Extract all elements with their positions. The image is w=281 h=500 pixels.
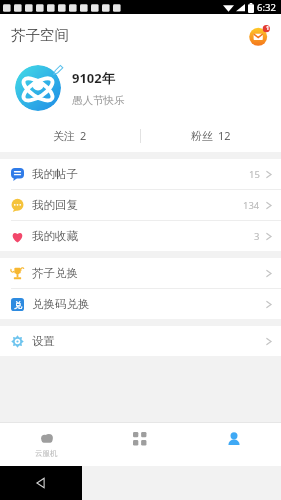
button[interactable]: 关注 (0, 119, 140, 152)
staticText: 15 (249, 168, 260, 181)
button[interactable]: 我的帖子 (0, 159, 281, 189)
staticText: 芥子空间 (11, 26, 69, 44)
button[interactable]: 设置 (0, 326, 281, 356)
staticText: 关注 (53, 129, 75, 143)
staticText: 1 (266, 24, 270, 31)
staticText: 愚人节快乐 (72, 94, 125, 107)
staticText: 3 (254, 230, 260, 243)
button[interactable]: Profile (187, 422, 281, 466)
staticText: 设置 (32, 334, 55, 348)
staticText: 6:32 (257, 1, 276, 14)
button[interactable]: 兑 (0, 289, 281, 319)
button[interactable]: 芥子兑换 (0, 258, 281, 288)
button[interactable]: Apps (93, 422, 187, 466)
button[interactable]: Messages (245, 20, 275, 50)
button[interactable]: 粉丝 (141, 119, 281, 152)
staticText: 134 (243, 199, 260, 212)
staticText: 芥子兑换 (32, 266, 78, 280)
staticText: 粉丝 (191, 129, 213, 143)
staticText: 兑 (14, 300, 22, 310)
staticText: 兑换码兑换 (32, 297, 90, 311)
staticText: 我的帖子 (32, 167, 78, 181)
staticText: 2 (80, 128, 87, 143)
staticText: 云服机 (35, 449, 58, 458)
staticText: 12 (218, 128, 231, 143)
button[interactable]: 我的回复 (0, 190, 281, 220)
staticText: 我的回复 (32, 198, 78, 212)
button[interactable]: Cloud machines (0, 422, 93, 466)
button[interactable]: 我的收藏 (0, 221, 281, 251)
other: Back (35, 477, 47, 489)
staticText: 9102年 (72, 69, 115, 87)
staticText: 我的收藏 (32, 229, 78, 243)
